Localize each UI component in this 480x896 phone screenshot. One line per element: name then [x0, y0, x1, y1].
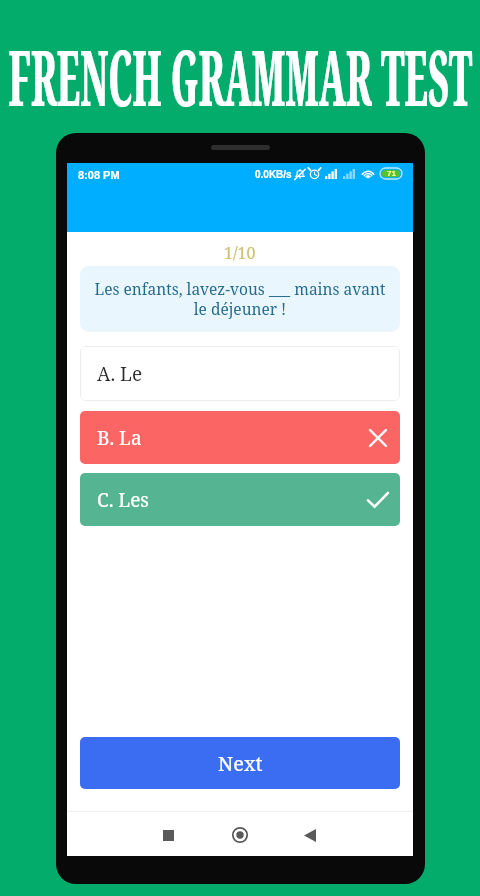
button[interactable]: Home — [223, 818, 257, 852]
staticText: Les enfants, lavez-vous ___ mains avant … — [94, 278, 386, 320]
staticText: 8:08 PM — [78, 169, 120, 181]
button[interactable]: C. Les — [80, 473, 400, 526]
staticText: B. La — [97, 425, 142, 451]
button[interactable]: B. La — [80, 411, 400, 464]
staticText: 1/10 — [224, 242, 256, 264]
button[interactable]: Recents — [151, 818, 185, 852]
staticText: A. Le — [97, 361, 143, 387]
button[interactable]: Next — [80, 737, 400, 789]
button[interactable]: Back — [293, 818, 327, 852]
staticText: C. Les — [97, 487, 149, 513]
staticText: 0.0KB/s — [255, 169, 292, 180]
staticText: 71 — [387, 169, 396, 178]
staticText: Next — [218, 750, 263, 777]
button[interactable]: A. Le — [80, 346, 400, 401]
staticText: FRENCH GRAMMAR TEST — [8, 24, 472, 129]
